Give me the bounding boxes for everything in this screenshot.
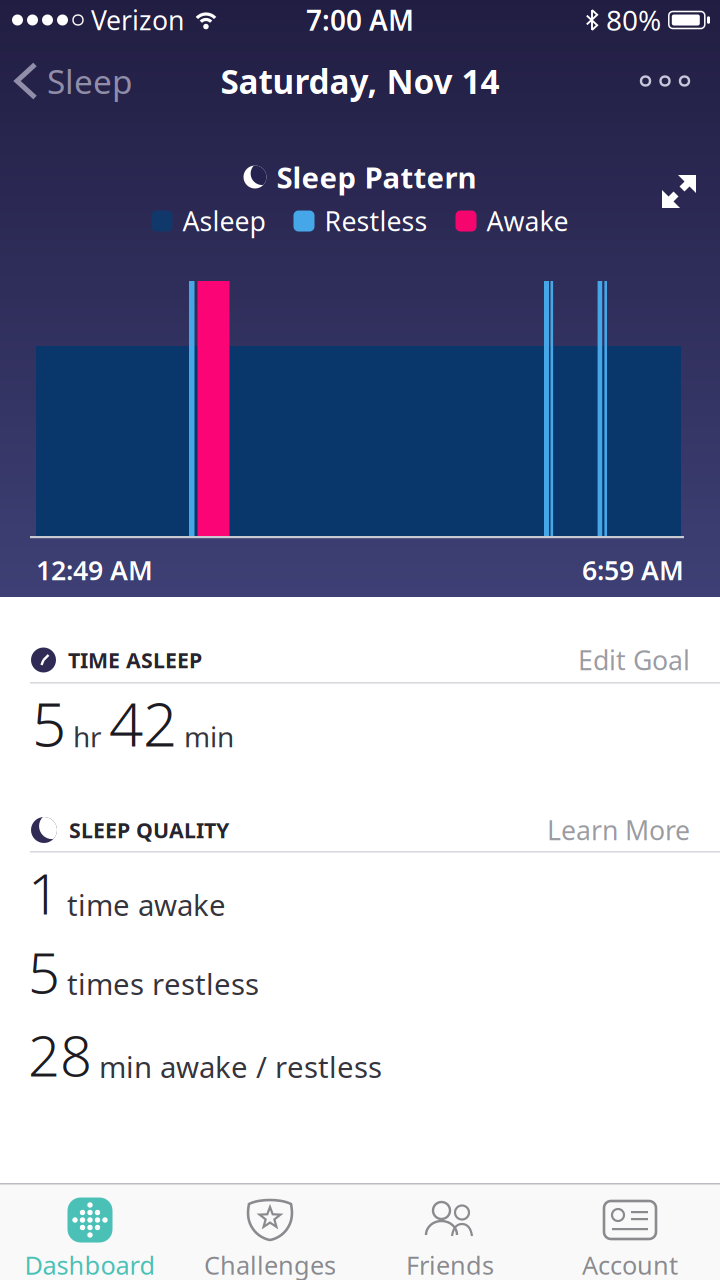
button[interactable] xyxy=(620,40,710,122)
staticText: times restless xyxy=(67,964,259,1003)
button[interactable]: Challenges xyxy=(180,1183,360,1280)
staticText: Edit Goal xyxy=(578,642,690,678)
staticText: Asleep xyxy=(182,203,265,239)
staticText: Verizon xyxy=(91,2,184,38)
staticText: 1 xyxy=(28,856,60,930)
staticText: SLEEP QUALITY xyxy=(69,816,229,844)
button[interactable]: Account xyxy=(540,1183,720,1280)
staticText: hr xyxy=(73,718,102,755)
button[interactable]: Edit Goal xyxy=(490,640,690,680)
staticText: 5 xyxy=(28,935,60,1009)
staticText: 80% xyxy=(606,1,661,39)
button[interactable]: Dashboard xyxy=(0,1183,180,1280)
staticText: 5 xyxy=(32,683,66,763)
button[interactable]: Friends xyxy=(360,1183,540,1280)
staticText: TIME ASLEEP xyxy=(68,646,202,674)
staticText: 12:49 AM xyxy=(36,552,153,588)
staticText: min xyxy=(184,718,234,755)
staticText: 6:59 AM xyxy=(582,552,684,588)
staticText: Sleep Pattern xyxy=(276,157,476,196)
staticText: 7:00 AM xyxy=(306,1,414,39)
staticText: Learn More xyxy=(547,812,690,848)
staticText: time awake xyxy=(67,885,226,924)
staticText: min awake / restless xyxy=(99,1047,382,1086)
staticText: Saturday, Nov 14 xyxy=(220,59,499,103)
staticText: Dashboard xyxy=(24,1248,155,1280)
button[interactable] xyxy=(662,173,696,210)
staticText: 42 xyxy=(109,683,177,763)
staticText: 28 xyxy=(28,1018,92,1092)
staticText: Awake xyxy=(486,203,568,239)
staticText: Friends xyxy=(406,1248,494,1280)
staticText: Restless xyxy=(324,203,427,239)
staticText: Challenges xyxy=(204,1248,336,1280)
staticText: Account xyxy=(582,1248,678,1280)
button[interactable]: Learn More xyxy=(490,810,690,850)
button[interactable]: Sleep xyxy=(0,40,133,122)
staticText: Sleep xyxy=(47,59,133,103)
